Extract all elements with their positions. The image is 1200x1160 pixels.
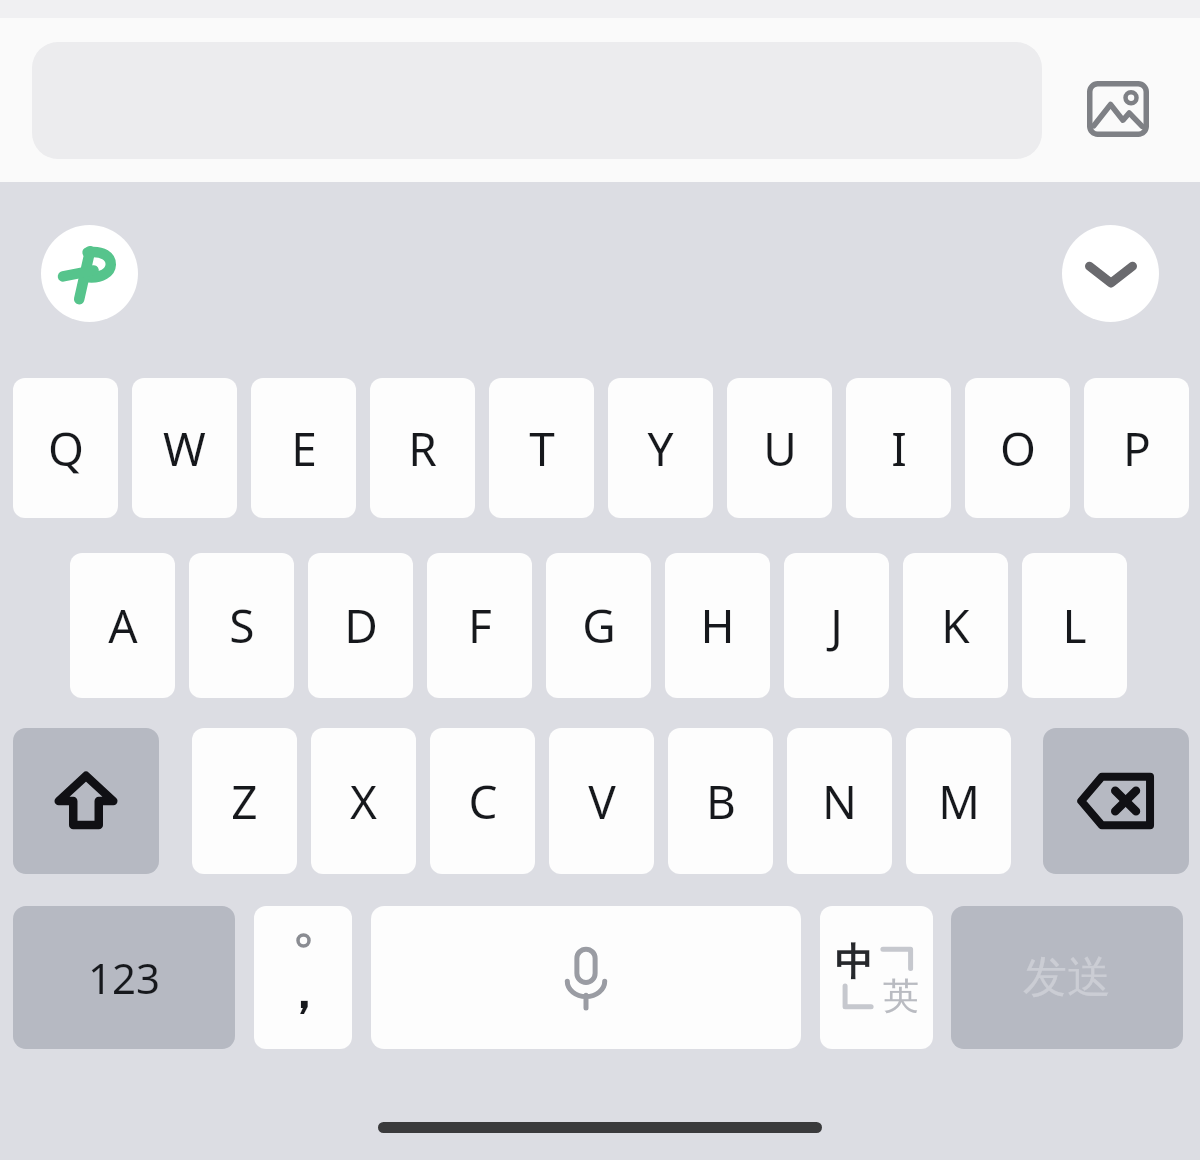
button[interactable]: Y (608, 378, 713, 518)
staticText: D (344, 594, 378, 657)
staticText: 发送 (1023, 950, 1111, 1005)
staticText: I (891, 417, 907, 480)
staticText: A (108, 594, 138, 657)
staticText: ， (280, 964, 326, 1022)
staticText: U (763, 417, 797, 480)
button[interactable]: D (308, 553, 413, 698)
staticText: E (291, 417, 317, 480)
button[interactable]: Q (13, 378, 118, 518)
staticText: R (408, 417, 437, 480)
button[interactable]: J (784, 553, 889, 698)
button[interactable]: Punctuation (254, 906, 352, 1049)
staticText: Z (231, 770, 258, 833)
button[interactable]: P (1084, 378, 1189, 518)
staticText: P (1123, 417, 1151, 480)
staticText: 英 (883, 973, 919, 1018)
button[interactable]: 123 (13, 906, 235, 1049)
button[interactable]: Z (192, 728, 297, 874)
button[interactable]: I (846, 378, 951, 518)
staticText: T (529, 417, 555, 480)
button[interactable]: Keyboard app logo (41, 225, 138, 322)
button[interactable]: E (251, 378, 356, 518)
button[interactable]: N (787, 728, 892, 874)
button[interactable]: R (370, 378, 475, 518)
button[interactable]: K (903, 553, 1008, 698)
staticText: J (830, 594, 843, 657)
staticText: G (582, 594, 616, 657)
button[interactable]: Insert image (1068, 68, 1168, 150)
button[interactable]: B (668, 728, 773, 874)
button[interactable]: C (430, 728, 535, 874)
staticText: V (588, 770, 616, 833)
staticText: N (822, 770, 857, 833)
button[interactable]: L (1022, 553, 1127, 698)
button[interactable]: Switch Chinese English (820, 906, 933, 1049)
button[interactable]: Hide keyboard (1062, 225, 1159, 322)
staticText: F (468, 594, 492, 657)
staticText: X (350, 770, 377, 833)
staticText: H (700, 594, 735, 657)
button[interactable]: S (189, 553, 294, 698)
staticText: Y (647, 417, 674, 480)
staticText: B (706, 770, 736, 833)
button[interactable]: V (549, 728, 654, 874)
button[interactable]: U (727, 378, 832, 518)
staticText: K (941, 594, 970, 657)
button[interactable]: Space, voice input (371, 906, 801, 1049)
staticText: O (1000, 417, 1036, 480)
button[interactable]: Shift (13, 728, 159, 874)
staticText: 中 (835, 938, 873, 986)
staticText: M (938, 770, 980, 833)
button[interactable]: X (311, 728, 416, 874)
button[interactable]: O (965, 378, 1070, 518)
staticText: Q (48, 417, 84, 480)
staticText: S (229, 594, 255, 657)
staticText: L (1062, 594, 1087, 657)
button[interactable]: Backspace (1043, 728, 1189, 874)
button[interactable]: T (489, 378, 594, 518)
button[interactable]: W (132, 378, 237, 518)
button[interactable]: G (546, 553, 651, 698)
button[interactable]: M (906, 728, 1011, 874)
button[interactable]: 发送 (951, 906, 1183, 1049)
staticText: W (163, 417, 206, 480)
button[interactable]: H (665, 553, 770, 698)
staticText: 123 (88, 949, 161, 1006)
staticText: C (468, 770, 498, 833)
button[interactable]: A (70, 553, 175, 698)
button[interactable]: F (427, 553, 532, 698)
